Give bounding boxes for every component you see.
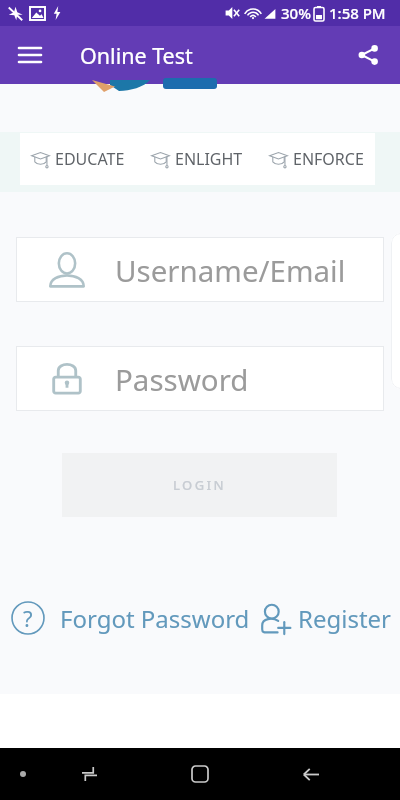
button[interactable]: Share <box>346 33 390 77</box>
button[interactable]: Register <box>259 602 392 635</box>
button[interactable]: LOGIN <box>62 453 337 517</box>
button[interactable]: ? <box>11 601 250 635</box>
staticText: ENFORCE <box>293 148 364 170</box>
staticText: 1:58 PM <box>329 3 386 23</box>
button[interactable]: Username/Email <box>16 237 384 302</box>
staticText: EDUCATE <box>55 148 125 170</box>
button[interactable]: Recent apps <box>67 752 111 796</box>
staticText: Register <box>298 602 392 635</box>
staticText: Password <box>115 359 249 399</box>
button[interactable]: Assistant <box>5 756 41 792</box>
button[interactable]: Back <box>289 752 333 796</box>
staticText: Username/Email <box>115 250 346 290</box>
staticText: 30% <box>281 3 311 23</box>
staticText: LOGIN <box>173 476 227 494</box>
button[interactable]: ENFORCE <box>269 148 364 170</box>
button[interactable]: EDUCATE <box>31 148 125 170</box>
button[interactable]: Menu <box>8 33 52 77</box>
button[interactable]: ENLIGHT <box>151 148 243 170</box>
button[interactable]: Password <box>16 346 384 411</box>
staticText: ? <box>23 603 33 633</box>
staticText: Forgot Password <box>60 602 250 635</box>
staticText: ENLIGHT <box>175 148 243 170</box>
button[interactable]: Home <box>178 752 222 796</box>
staticText: Online Test <box>80 41 193 70</box>
